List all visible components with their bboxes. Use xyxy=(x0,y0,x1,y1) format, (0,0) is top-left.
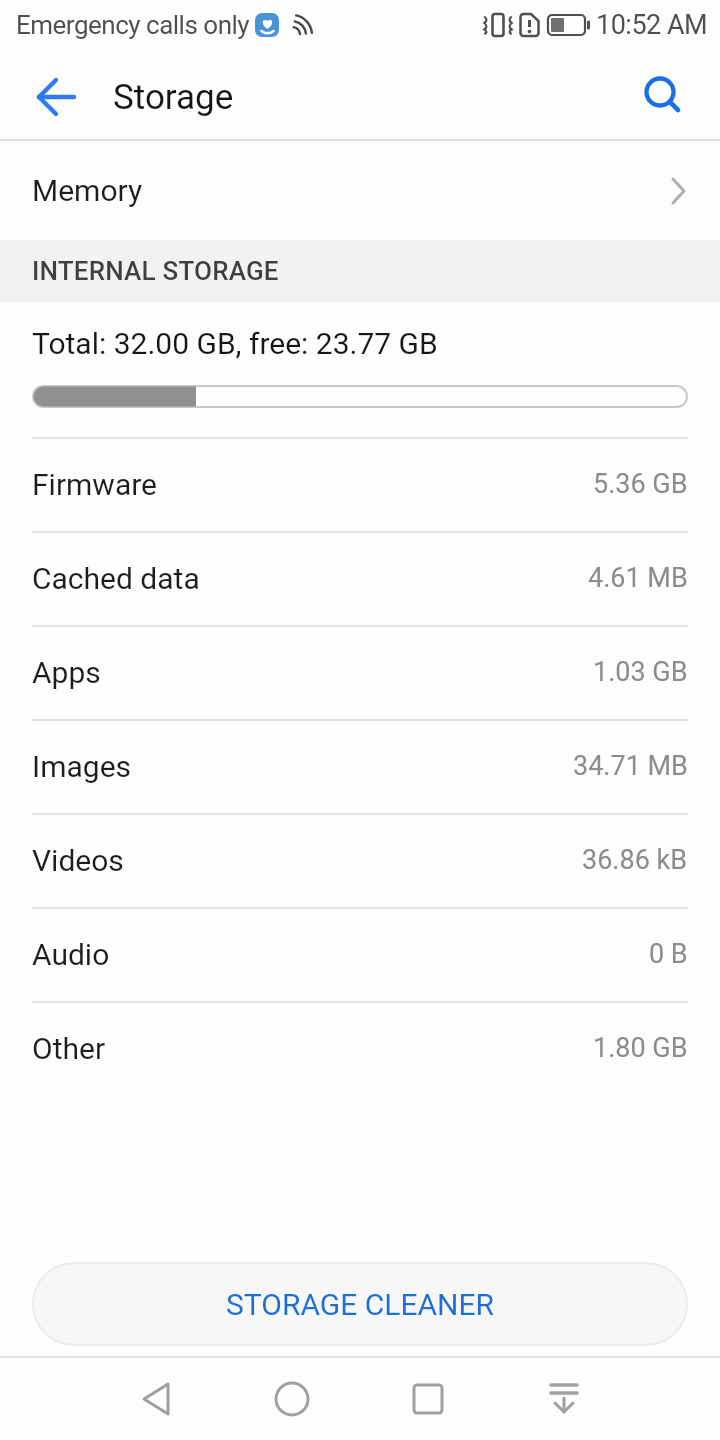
button[interactable] xyxy=(360,1358,496,1440)
staticText: STORAGE CLEANER xyxy=(226,1287,495,1322)
staticText: Audio xyxy=(32,937,110,972)
staticText: 5.36 GB xyxy=(593,468,688,500)
staticText: 36.86 kB xyxy=(582,844,688,876)
staticText: 34.71 MB xyxy=(573,750,688,782)
button[interactable]: Cached data xyxy=(0,531,720,625)
staticText: 0 B xyxy=(649,938,688,970)
button[interactable]: Firmware xyxy=(0,437,720,531)
staticText: Storage xyxy=(113,77,234,118)
staticText: Emergency calls only xyxy=(16,10,250,40)
button[interactable] xyxy=(496,1358,632,1440)
staticText: Cached data xyxy=(32,561,200,596)
staticText: Images xyxy=(32,749,132,784)
staticText: Videos xyxy=(32,843,124,878)
button[interactable]: Audio xyxy=(0,907,720,1001)
button[interactable] xyxy=(0,55,96,139)
button[interactable] xyxy=(616,55,712,139)
button[interactable]: Memory xyxy=(0,141,720,240)
staticText: 4.61 MB xyxy=(588,562,688,594)
staticText: Total: 32.00 GB, free: 23.77 GB xyxy=(32,326,438,361)
button[interactable]: Other xyxy=(0,1001,720,1095)
staticText: Apps xyxy=(32,655,101,690)
staticText: INTERNAL STORAGE xyxy=(32,256,279,286)
button[interactable]: STORAGE CLEANER xyxy=(32,1262,688,1346)
button[interactable]: Apps xyxy=(0,625,720,719)
staticText: 10:52 AM xyxy=(596,9,708,41)
staticText: Other xyxy=(32,1031,106,1066)
button[interactable] xyxy=(88,1358,224,1440)
button[interactable]: Videos xyxy=(0,813,720,907)
staticText: 1.80 GB xyxy=(593,1032,688,1064)
button[interactable]: Images xyxy=(0,719,720,813)
staticText: 1.03 GB xyxy=(593,656,688,688)
staticText: Firmware xyxy=(32,467,158,502)
button[interactable] xyxy=(224,1358,360,1440)
staticText: Memory xyxy=(32,173,143,208)
